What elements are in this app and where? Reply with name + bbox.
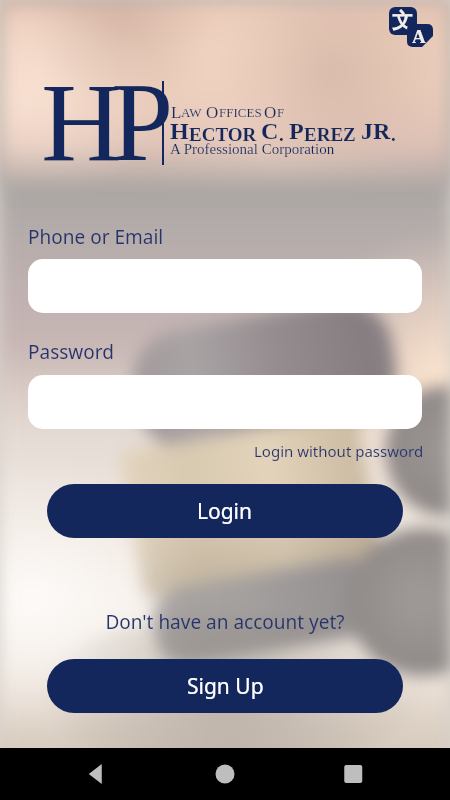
staticText: J bbox=[361, 118, 373, 145]
button[interactable]: Sign Up bbox=[47, 659, 403, 713]
staticText: Login bbox=[197, 497, 253, 526]
staticText: . bbox=[279, 124, 289, 145]
staticText: C bbox=[261, 118, 279, 145]
staticText: 文 bbox=[392, 8, 413, 34]
staticText: O bbox=[264, 103, 277, 122]
staticText: A bbox=[412, 26, 426, 47]
staticText: F bbox=[277, 105, 285, 119]
staticText: AW bbox=[181, 105, 205, 119]
staticText: Phone or Email bbox=[28, 224, 164, 250]
staticText: P bbox=[289, 118, 304, 145]
button[interactable] bbox=[28, 375, 422, 429]
staticText: EREZ bbox=[304, 124, 361, 145]
staticText: H bbox=[170, 118, 189, 145]
staticText: L bbox=[171, 103, 182, 122]
staticText: ECTOR bbox=[189, 124, 261, 145]
staticText: O bbox=[206, 103, 219, 122]
button[interactable]: Login bbox=[47, 484, 403, 538]
button[interactable] bbox=[28, 259, 422, 313]
button[interactable]: Translate bbox=[389, 7, 435, 53]
staticText: HP bbox=[41, 60, 163, 184]
staticText: Sign Up bbox=[187, 672, 264, 701]
button[interactable]: Don't have an account yet? bbox=[0, 609, 450, 635]
staticText: Password bbox=[28, 339, 114, 365]
button[interactable]: Login without password bbox=[254, 441, 424, 461]
staticText: FFICES bbox=[219, 105, 265, 119]
staticText: . bbox=[391, 124, 396, 145]
staticText: A Professional Corporation bbox=[170, 141, 335, 158]
staticText: R bbox=[373, 118, 391, 145]
